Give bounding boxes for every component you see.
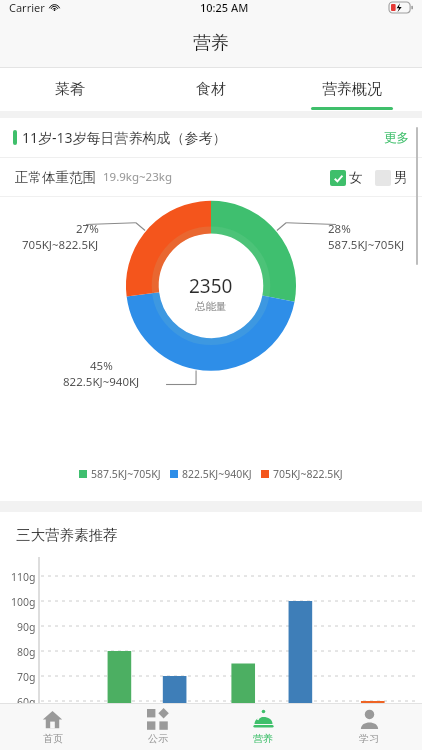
staticText: 更多 [384, 130, 409, 146]
staticText: 110g [11, 570, 36, 584]
staticText: 822.5KJ~940KJ [182, 467, 252, 481]
button[interactable]: 菜肴 [0, 68, 140, 111]
staticText: 80g [17, 645, 36, 659]
staticText: 11岁-13岁每日营养构成（参考） [22, 128, 227, 147]
staticText: 菜肴 [55, 80, 85, 99]
staticText: 营养 [193, 32, 229, 55]
staticText: Carrier [9, 0, 45, 15]
staticText: 2350 [189, 273, 233, 299]
button[interactable]: 男 [375, 169, 408, 186]
staticText: 正常体重范围 [15, 169, 96, 186]
staticText: 705KJ~822.5KJ [273, 467, 343, 481]
button[interactable]: 11岁-13岁每日营养构成（参考） [0, 118, 422, 157]
staticText: 90g [17, 620, 36, 634]
staticText: 总能量 [195, 300, 227, 313]
staticText: 男 [394, 169, 408, 186]
staticText: 705KJ~822.5KJ [22, 237, 99, 253]
button[interactable]: 营养概况 [281, 68, 422, 111]
staticText: 587.5KJ~705KJ [91, 467, 161, 481]
staticText: 女 [349, 169, 363, 186]
staticText: 822.5KJ~940KJ [63, 374, 140, 390]
staticText: 公示 [148, 732, 168, 745]
staticText: 首页 [43, 732, 63, 745]
staticText: 60g [17, 695, 36, 709]
staticText: 28% [328, 221, 351, 237]
button[interactable]: 食材 [140, 68, 281, 111]
staticText: 70g [17, 670, 36, 684]
button[interactable]: 公示 [105, 703, 210, 750]
staticText: 45% [90, 358, 113, 374]
staticText: 学习 [359, 732, 379, 745]
staticText: 10:25 AM [200, 0, 249, 15]
staticText: 100g [11, 595, 36, 609]
staticText: 营养 [253, 732, 273, 745]
button[interactable]: 学习 [316, 703, 422, 750]
staticText: 三大营养素推荐 [16, 526, 118, 544]
button[interactable]: 营养 [210, 703, 316, 750]
staticText: 587.5KJ~705KJ [328, 237, 405, 253]
staticText: 食材 [196, 80, 226, 99]
staticText: 27% [76, 221, 99, 237]
staticText: 营养概况 [322, 80, 382, 99]
button[interactable]: 女 [330, 169, 363, 186]
button[interactable]: 首页 [0, 703, 105, 750]
staticText: 19.9kg~23kg [103, 169, 172, 185]
